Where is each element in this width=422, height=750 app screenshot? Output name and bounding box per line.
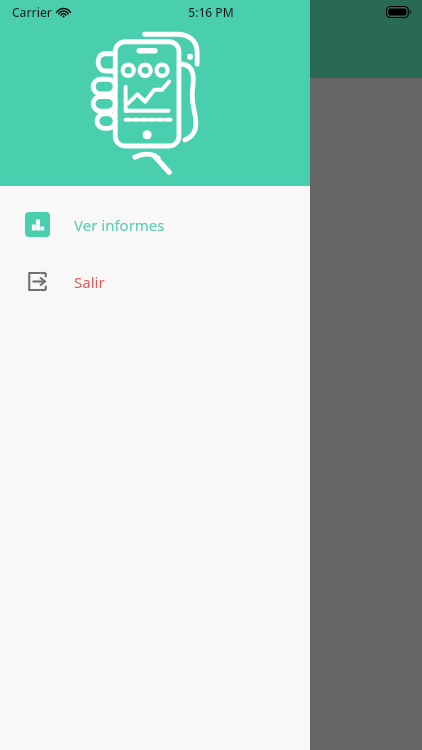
staticText: Salir: [74, 272, 105, 292]
staticText: Carrier: [12, 4, 52, 20]
button[interactable]: Ver informes: [0, 196, 310, 253]
button[interactable]: Salir: [0, 253, 310, 310]
staticText: 5:16 PM: [188, 4, 234, 20]
staticText: Ver informes: [74, 215, 165, 235]
